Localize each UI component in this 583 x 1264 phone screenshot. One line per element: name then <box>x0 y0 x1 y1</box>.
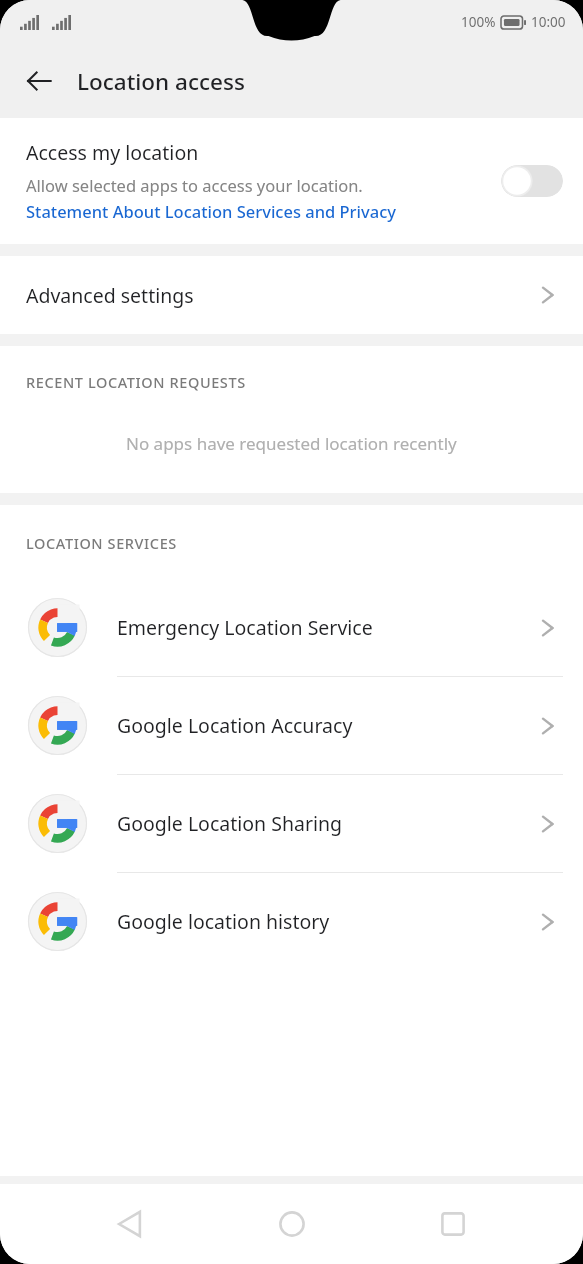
button[interactable]: Google location history <box>0 873 583 970</box>
staticText: Google Location Accuracy <box>117 712 353 739</box>
staticText: Google Location Sharing <box>117 810 343 837</box>
staticText: RECENT LOCATION REQUESTS <box>26 372 246 392</box>
staticText: Google location history <box>117 908 330 935</box>
button[interactable]: Home <box>261 1193 323 1255</box>
staticText: 100% <box>461 13 496 31</box>
button[interactable]: Emergency Location Service <box>0 579 583 676</box>
staticText: Access my location <box>26 139 199 166</box>
staticText: Emergency Location Service <box>117 614 373 641</box>
button[interactable]: Back <box>99 1193 161 1255</box>
staticText: 10:00 <box>531 13 566 31</box>
staticText: Allow selected apps to access your locat… <box>26 174 363 196</box>
button[interactable]: Access my location <box>0 118 583 244</box>
button[interactable]: Advanced settings <box>0 256 583 334</box>
staticText: No apps have requested location recently <box>126 432 457 455</box>
staticText: Statement About Location Services and Pr… <box>26 200 396 222</box>
staticText: Advanced settings <box>26 282 194 309</box>
button[interactable]: Google Location Sharing <box>0 775 583 872</box>
button[interactable]: Google Location Accuracy <box>0 677 583 774</box>
button[interactable]: Back <box>14 56 64 106</box>
staticText: Location access <box>77 66 245 97</box>
staticText: LOCATION SERVICES <box>26 533 177 553</box>
button[interactable]: Recent apps <box>422 1193 484 1255</box>
button[interactable]: Access my location toggle <box>501 165 563 197</box>
